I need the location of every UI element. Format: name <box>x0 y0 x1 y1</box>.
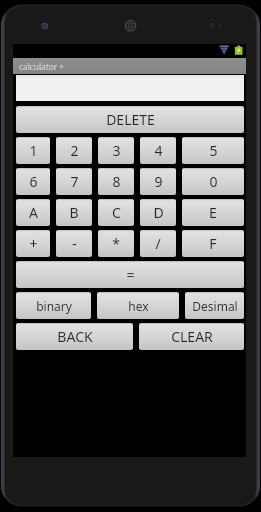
staticText: CLEAR <box>171 327 213 346</box>
staticText: = <box>126 265 135 284</box>
staticText: 5 <box>209 141 218 160</box>
button[interactable]: / <box>140 230 176 257</box>
staticText: binary <box>36 298 72 314</box>
button[interactable]: C <box>98 199 134 226</box>
button[interactable]: 8 <box>98 168 134 195</box>
button[interactable]: B <box>56 199 92 226</box>
button[interactable]: CLEAR <box>139 323 244 350</box>
button[interactable]: E <box>182 199 244 226</box>
staticText: hex <box>128 298 149 314</box>
staticText: 9 <box>154 172 163 191</box>
button[interactable]: 4 <box>140 137 176 164</box>
button[interactable]: binary <box>16 292 91 319</box>
button[interactable]: 5 <box>182 137 244 164</box>
button[interactable]: - <box>56 230 92 257</box>
staticText: - <box>72 234 77 253</box>
button[interactable]: D <box>140 199 176 226</box>
staticText: * <box>112 234 120 253</box>
staticText: 1 <box>29 141 38 160</box>
button[interactable]: 7 <box>56 168 92 195</box>
button[interactable]: 0 <box>182 168 244 195</box>
button[interactable]: 6 <box>16 168 50 195</box>
button[interactable]: Desimal <box>185 292 244 319</box>
button[interactable]: 2 <box>56 137 92 164</box>
button[interactable]: hex <box>97 292 179 319</box>
button[interactable]: + <box>16 230 50 257</box>
button[interactable]: 1 <box>16 137 50 164</box>
staticText: Desimal <box>192 298 238 314</box>
staticText: 3 <box>112 141 121 160</box>
button[interactable]: 3 <box>98 137 134 164</box>
staticText: E <box>209 203 217 222</box>
button[interactable]: calculator + <box>13 58 246 74</box>
button[interactable]: F <box>182 230 244 257</box>
button[interactable]: * <box>98 230 134 257</box>
button[interactable]: = <box>16 261 244 288</box>
staticText: 8 <box>112 172 121 191</box>
staticText: / <box>155 234 161 253</box>
staticText: 4 <box>154 141 163 160</box>
staticText: D <box>153 203 164 222</box>
staticText: calculator + <box>19 61 65 72</box>
staticText: DELETE <box>106 110 155 129</box>
button[interactable]: 9 <box>140 168 176 195</box>
button[interactable]: A <box>16 199 50 226</box>
staticText: 2 <box>70 141 79 160</box>
staticText: F <box>209 234 217 253</box>
staticText: 7 <box>70 172 79 191</box>
button[interactable]: BACK <box>16 323 133 350</box>
staticText: B <box>69 203 79 222</box>
staticText: BACK <box>57 327 93 346</box>
staticText: + <box>29 234 38 253</box>
staticText: 0 <box>209 172 218 191</box>
staticText: A <box>29 203 38 222</box>
staticText: 6 <box>29 172 38 191</box>
staticText: C <box>112 203 121 222</box>
button[interactable]: DELETE <box>16 106 244 133</box>
